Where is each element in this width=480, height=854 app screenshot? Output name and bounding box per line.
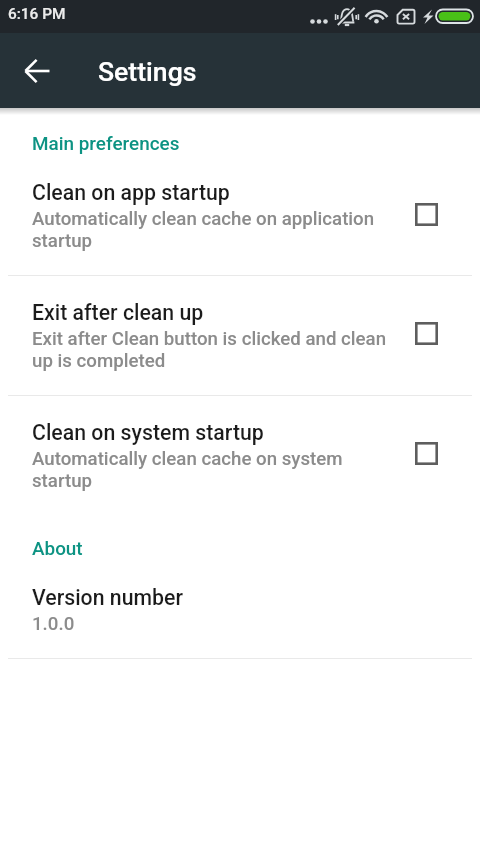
staticText: Exit after Clean button is clicked and c…: [32, 328, 392, 372]
staticText: Clean on system startup: [32, 420, 264, 445]
button[interactable]: Exit after clean up: [0, 276, 480, 395]
button[interactable]: Navigate up: [13, 46, 62, 95]
staticText: Exit after clean up: [32, 300, 204, 325]
staticText: Clean on app startup: [32, 180, 230, 205]
staticText: 6:16 PM: [8, 5, 66, 23]
button[interactable]: Toggle Clean on system startup: [392, 442, 460, 465]
button[interactable]: Clean on app startup: [0, 159, 480, 275]
button[interactable]: Toggle Exit after clean up: [392, 322, 460, 345]
button[interactable]: Clean on system startup: [0, 396, 480, 515]
button[interactable]: Version number: [0, 564, 480, 658]
staticText: Automatically clean cache on application…: [32, 208, 392, 252]
staticText: 1.0.0: [32, 613, 75, 635]
staticText: About: [32, 537, 480, 559]
staticText: Version number: [32, 585, 184, 610]
staticText: Settings: [98, 56, 197, 87]
staticText: Automatically clean cache on system star…: [32, 448, 392, 492]
button[interactable]: Toggle Clean on app startup: [392, 203, 460, 226]
staticText: Main preferences: [32, 132, 480, 154]
